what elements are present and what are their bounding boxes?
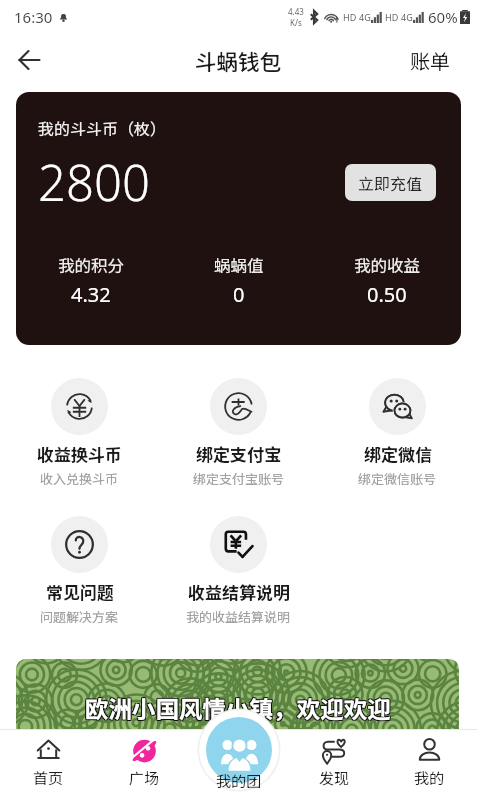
- staticText: 收益换斗币: [37, 441, 122, 466]
- staticText: 欧洲小国风情小镇，欢迎欢迎: [85, 692, 391, 726]
- staticText: 立即充值: [358, 171, 423, 194]
- staticText: 常见问题: [46, 579, 114, 604]
- staticText: 收益结算说明: [188, 579, 290, 604]
- staticText: K/s: [290, 17, 302, 28]
- staticText: 绑定支付宝: [196, 441, 281, 466]
- button[interactable]: 发现: [287, 729, 382, 797]
- button[interactable]: 常见问题: [0, 516, 159, 626]
- button[interactable]: 收益换斗币: [0, 378, 159, 488]
- staticText: 斗蜗钱包: [195, 45, 282, 76]
- button[interactable]: Back: [6, 37, 52, 83]
- staticText: 0: [233, 281, 245, 308]
- staticText: 我的收益结算说明: [186, 607, 291, 626]
- staticText: 4G: [359, 11, 371, 23]
- staticText: 欧洲小国风情小镇，欢迎欢迎: [86, 690, 392, 724]
- staticText: 问题解决方案: [40, 607, 119, 626]
- staticText: 蜗蜗值: [214, 253, 264, 277]
- staticText: 我的积分: [58, 253, 124, 277]
- button[interactable]: 绑定微信: [318, 378, 477, 488]
- staticText: 欧洲小国风情小镇，欢迎欢迎: [84, 691, 390, 725]
- staticText: 我的团: [216, 770, 262, 792]
- staticText: 欧洲小国风情小镇，欢迎欢迎: [84, 690, 390, 724]
- staticText: 2800: [38, 149, 150, 216]
- staticText: 我的斗斗币（枚）: [38, 116, 167, 139]
- staticText: 绑定微信: [364, 441, 432, 466]
- staticText: 16:30: [14, 7, 53, 27]
- staticText: 我的: [414, 767, 445, 789]
- staticText: 首页: [33, 767, 64, 789]
- staticText: 账单: [410, 46, 450, 75]
- staticText: 发现: [319, 767, 350, 789]
- button[interactable]: 首页: [0, 729, 96, 797]
- staticText: 0.50: [367, 281, 407, 308]
- staticText: 广场: [129, 767, 160, 789]
- button[interactable]: 绑定支付宝: [159, 378, 318, 488]
- staticText: HD: [343, 11, 357, 23]
- staticText: HD: [385, 11, 399, 23]
- button[interactable]: 我的: [382, 729, 477, 797]
- staticText: 绑定微信账号: [358, 469, 437, 488]
- staticText: 60%: [428, 7, 458, 27]
- button[interactable]: 立即充值: [345, 164, 436, 201]
- staticText: 4.43: [288, 6, 304, 17]
- button[interactable]: 我的团: [194, 725, 284, 797]
- button[interactable]: 收益结算说明: [159, 516, 318, 626]
- staticText: 4G: [401, 11, 413, 23]
- button[interactable]: 欧洲小国风情小镇，欢迎欢迎: [16, 659, 459, 729]
- button[interactable]: 我的斗斗币（枚）: [16, 92, 461, 345]
- staticText: 欧洲小国风情小镇，欢迎欢迎: [86, 692, 392, 726]
- staticText: 收入兑换斗币: [40, 469, 119, 488]
- staticText: 欧洲小国风情小镇，欢迎欢迎: [86, 691, 392, 725]
- button[interactable]: 账单: [402, 40, 458, 81]
- staticText: 4.32: [71, 281, 111, 308]
- staticText: 欧洲小国风情小镇，欢迎欢迎: [84, 692, 390, 726]
- staticText: 欧洲小国风情小镇，欢迎欢迎: [85, 691, 391, 725]
- staticText: 我的收益: [354, 253, 420, 277]
- staticText: 欧洲小国风情小镇，欢迎欢迎: [85, 690, 391, 724]
- button[interactable]: 广场: [96, 729, 192, 797]
- staticText: 绑定支付宝账号: [193, 469, 285, 488]
